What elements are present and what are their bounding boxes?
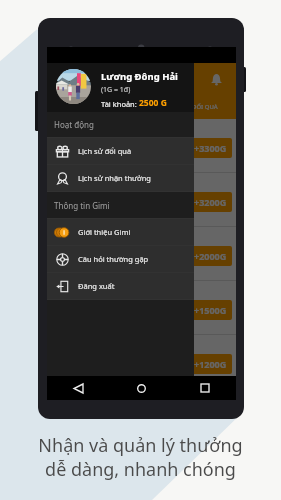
staticText: Lịch sử đổi quà — [78, 146, 132, 156]
button[interactable]: ĐỔI QUÀ — [173, 95, 236, 119]
staticText: +3200G — [194, 196, 227, 208]
button[interactable]: Recents — [173, 376, 236, 400]
staticText: Đăng xuất — [78, 281, 115, 291]
staticText: +1200G — [194, 358, 227, 370]
button[interactable]: NHIỆM VỤ — [47, 95, 110, 119]
staticText: Nhận và quản lý thưởng dễ dàng, nhanh ch… — [38, 433, 243, 481]
staticText: +2000G — [194, 250, 227, 262]
button[interactable]: Đăng xuất — [47, 273, 194, 299]
button[interactable]: +2000G — [47, 227, 236, 281]
staticText: 2500 G — [139, 97, 167, 109]
staticText: Lương Đông Hải — [101, 70, 178, 83]
staticText: Lịch sử nhận thưởng — [78, 173, 151, 183]
staticText: Gimi — [85, 72, 108, 86]
staticText: LỊCH SỬ — [130, 103, 154, 111]
button[interactable]: +1200G — [47, 335, 236, 389]
button[interactable]: Lịch sử nhận thưởng — [47, 165, 194, 191]
button[interactable]: +3200G — [47, 173, 236, 227]
staticText: NHIỆM VỤ — [64, 103, 94, 111]
staticText: (1G = 1đ) — [101, 85, 131, 95]
button[interactable]: +1500G — [47, 281, 236, 335]
button[interactable]: Back — [47, 376, 110, 400]
staticText: Câu hỏi thường gặp — [78, 254, 149, 264]
button[interactable]: Open navigation drawer — [53, 66, 79, 92]
staticText: Tài khoản: — [101, 99, 139, 109]
staticText: Hoạt động — [54, 119, 94, 130]
button[interactable]: +3300G — [47, 119, 236, 173]
button[interactable]: Giới thiệu Gimi — [47, 219, 194, 245]
button[interactable]: Lịch sử đổi quà — [47, 138, 194, 164]
button[interactable]: LỊCH SỬ — [110, 95, 173, 119]
staticText: Thông tin Gimi — [54, 200, 110, 211]
staticText: Giới thiệu Gimi — [78, 227, 131, 237]
button[interactable]: Home — [110, 376, 173, 400]
staticText: +1500G — [194, 304, 227, 316]
button[interactable]: Notifications — [203, 66, 229, 92]
button[interactable]: Câu hỏi thường gặp — [47, 246, 194, 272]
staticText: ĐỔI QUÀ — [192, 103, 218, 111]
staticText: +3300G — [194, 142, 227, 154]
